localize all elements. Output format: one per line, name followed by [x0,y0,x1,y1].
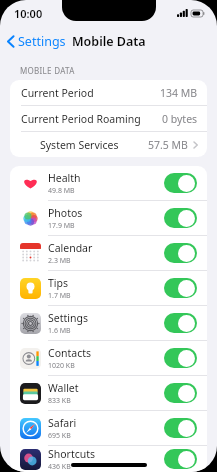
staticText: Settings [48,311,88,325]
staticText: 1.7 MB [48,291,71,301]
button[interactable]: Toggle mobile data [164,313,197,333]
staticText: Contacts [48,346,92,360]
button[interactable]: Toggle mobile data [164,173,197,193]
button[interactable]: Toggle mobile data [164,418,197,438]
button[interactable]: Tips [10,271,207,305]
staticText: Photos [48,206,83,220]
button[interactable]: Wallet [10,376,207,410]
staticText: 833 KB [48,396,71,406]
button[interactable]: Toggle mobile data [164,208,197,228]
staticText: MOBILE DATA [20,65,75,76]
staticText: Health [48,171,81,185]
button[interactable]: Toggle mobile data [164,383,197,403]
button[interactable]: Toggle mobile data [164,348,197,368]
button[interactable]: Contacts [10,341,207,375]
staticText: Mobile Data [72,33,146,50]
staticText: 17.9 MB [48,221,75,231]
staticText: 10:00 [14,6,43,21]
staticText: 2.3 MB [48,256,71,266]
staticText: Wallet [48,381,79,395]
button[interactable]: Photos [10,201,207,235]
staticText: 0 bytes [162,112,198,126]
button[interactable]: Toggle mobile data [164,243,197,263]
staticText: Current Period Roaming [21,112,141,126]
staticText: Safari [48,416,77,430]
staticText: Calendar [48,241,93,255]
staticText: 695 KB [48,431,71,441]
staticText: Tips [48,276,69,290]
button[interactable]: Calendar [10,236,207,270]
button[interactable]: Shortcuts [10,446,207,472]
button[interactable]: System Services [10,132,207,157]
staticText: System Services [40,138,119,152]
button[interactable]: Settings [0,28,72,55]
button[interactable]: Toggle mobile data [164,449,197,469]
button[interactable]: Toggle mobile data [164,278,197,298]
staticText: Current Period [21,86,94,100]
staticText: 49.8 MB [48,186,75,196]
staticText: 134 MB [160,86,198,100]
staticText: Settings [18,33,66,50]
button[interactable]: Current Period [10,80,207,105]
staticText: 436 KB [48,462,71,472]
button[interactable]: Settings [10,306,207,340]
staticText: 1.6 MB [48,326,71,336]
button[interactable]: Health [10,166,207,200]
staticText: 57.5 MB [148,138,188,152]
button[interactable]: Current Period Roaming [10,106,207,131]
staticText: 1020 KB [48,361,75,371]
button[interactable]: Safari [10,411,207,445]
staticText: Shortcuts [48,447,96,461]
